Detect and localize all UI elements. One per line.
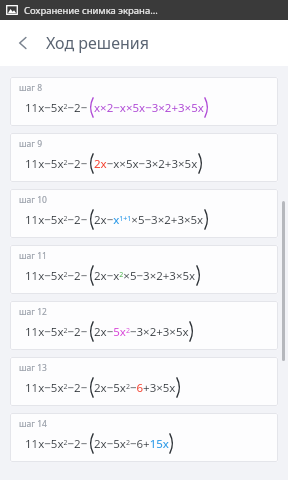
staticText: 11x−5x2−2− xyxy=(25,380,88,396)
staticText: Ход решения xyxy=(46,32,149,54)
button[interactable]: шаг 13 xyxy=(10,357,278,406)
button[interactable]: шаг 10 xyxy=(10,189,278,238)
staticText: x×2−x×5x−3×2+3×5x xyxy=(94,100,204,116)
button[interactable]: шаг 11 xyxy=(10,245,278,294)
staticText: Сохранение снимка экрана... xyxy=(24,4,158,17)
staticText: шаг 14 xyxy=(19,418,47,430)
button[interactable]: шаг 14 xyxy=(10,413,278,462)
staticText: шаг 12 xyxy=(19,306,47,318)
staticText: 11x−5x2−2− xyxy=(25,324,88,340)
button[interactable]: шаг 12 xyxy=(10,301,278,350)
staticText: шаг 9 xyxy=(19,138,43,150)
button[interactable]: шаг 9 xyxy=(10,133,278,182)
staticText: 11x−5x2−2− xyxy=(25,268,88,284)
staticText: 11x−5x2−2− xyxy=(25,156,88,172)
staticText: 2x−5x2−3×2+3×5x xyxy=(94,324,189,340)
staticText: 11x−5x2−2− xyxy=(25,100,88,116)
staticText: шаг 8 xyxy=(19,82,43,94)
staticText: шаг 13 xyxy=(19,362,47,374)
staticText: 2x−x1+1×5−3×2+3×5x xyxy=(94,212,204,228)
staticText: 2x−x2×5−3×2+3×5x xyxy=(94,268,196,284)
staticText: 11x−5x2−2− xyxy=(25,212,88,228)
staticText: 11x−5x2−2− xyxy=(25,436,88,452)
staticText: шаг 10 xyxy=(19,194,47,206)
staticText: 2x−5x2−6+3×5x xyxy=(94,380,176,396)
staticText: шаг 11 xyxy=(19,250,47,262)
staticText: 2x−5x2−6+15x xyxy=(94,436,169,452)
button[interactable]: шаг 8 xyxy=(10,77,278,126)
button[interactable]: Back xyxy=(0,20,46,66)
staticText: 2x−x×5x−3×2+3×5x xyxy=(94,156,198,172)
